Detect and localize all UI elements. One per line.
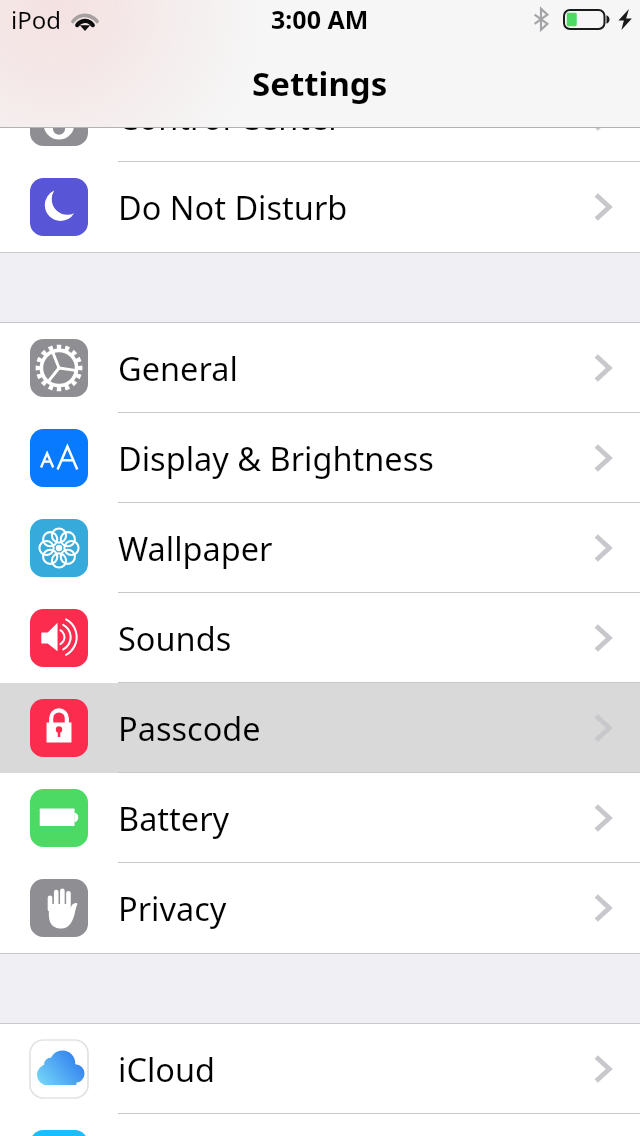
staticText: Display & Brightness [118, 436, 434, 480]
staticText: 3:00 AM [271, 2, 369, 36]
staticText: Passcode [118, 706, 261, 750]
staticText: iPod [11, 3, 61, 36]
button[interactable]: Sounds [0, 593, 640, 683]
button[interactable]: iTunes & App Store [0, 1114, 640, 1136]
button[interactable]: General [0, 323, 640, 413]
button[interactable]: Control Center [0, 72, 640, 162]
button[interactable]: Display & Brightness [0, 413, 640, 503]
staticText: iCloud [118, 1047, 216, 1091]
staticText: Privacy [118, 886, 227, 930]
button[interactable]: Wallpaper [0, 503, 640, 593]
staticText: General [118, 346, 238, 390]
staticText: Do Not Disturb [118, 185, 348, 229]
button[interactable]: Passcode [0, 683, 640, 773]
button[interactable]: Do Not Disturb [0, 162, 640, 252]
button[interactable]: Battery [0, 773, 640, 863]
button[interactable]: iCloud [0, 1024, 640, 1114]
staticText: Wallpaper [118, 526, 273, 570]
button[interactable]: Privacy [0, 863, 640, 953]
staticText: Sounds [118, 616, 232, 660]
staticText: Battery [118, 796, 230, 840]
staticText: Settings [252, 61, 388, 106]
staticText: Control Center [118, 95, 342, 139]
